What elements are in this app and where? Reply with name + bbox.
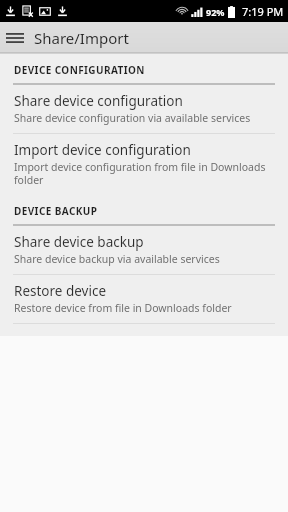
staticText: Restore device — [14, 282, 107, 300]
button[interactable]: Share device configuration — [0, 85, 288, 133]
staticText: Share device configuration via available… — [14, 111, 251, 125]
staticText: Share device backup — [14, 233, 144, 251]
staticText: Share device configuration — [14, 92, 183, 110]
button[interactable]: Import device configuration — [0, 134, 288, 195]
staticText: Share/Import — [34, 28, 129, 48]
staticText: DEVICE BACKUP — [14, 204, 98, 218]
staticText: Import device configuration from file in… — [14, 160, 274, 187]
button[interactable]: Restore device — [0, 275, 288, 323]
staticText: 7:19 PM — [242, 4, 284, 19]
button[interactable]: Share device backup — [0, 226, 288, 274]
staticText: Import device configuration — [14, 141, 191, 159]
button[interactable]: Open navigation menu — [0, 23, 30, 53]
staticText: Restore device from file in Downloads fo… — [14, 301, 232, 315]
staticText: DEVICE CONFIGURATION — [14, 63, 145, 77]
staticText: 92% — [206, 6, 225, 18]
staticText: Share device backup via available servic… — [14, 252, 220, 266]
